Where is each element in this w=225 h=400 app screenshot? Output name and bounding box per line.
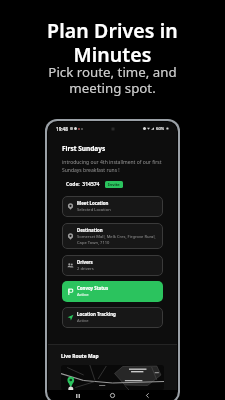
- staticText: Active: [77, 292, 89, 298]
- staticText: introducing our 4th installment of our f…: [62, 159, 162, 173]
- button[interactable]: Drivers: [62, 255, 163, 276]
- staticText: Pick route, time, and meeting spot.: [48, 63, 177, 97]
- staticText: Live Route Map: [61, 353, 99, 360]
- button[interactable]: Recent apps: [72, 390, 83, 400]
- staticText: Code: 314574: [66, 181, 100, 188]
- button[interactable]: Back: [142, 390, 153, 400]
- staticText: 60%: [156, 126, 165, 132]
- staticText: Plan Drives in Minutes: [47, 17, 178, 68]
- staticText: First Sundays: [62, 144, 106, 153]
- staticText: Selected Location: [77, 207, 111, 213]
- staticText: Invite: [108, 182, 120, 187]
- staticText: 19:48: [56, 126, 68, 132]
- staticText: Somerset Mall, Melk Cres, Firgrove Rural…: [77, 234, 156, 245]
- staticText: 2 drivers: [77, 266, 94, 272]
- staticText: Drivers: [77, 259, 93, 265]
- button[interactable]: Destination: [62, 223, 163, 249]
- button[interactable]: Convoy Status: [62, 281, 163, 302]
- staticText: Destination: [77, 227, 103, 233]
- button[interactable]: Meet Location: [62, 196, 163, 217]
- button[interactable]: Location Tracking: [62, 307, 163, 328]
- staticText: Location Tracking: [77, 311, 116, 317]
- button[interactable]: Home: [107, 390, 118, 400]
- staticText: Meet Location: [77, 200, 109, 206]
- staticText: Active: [77, 318, 89, 324]
- staticText: Convoy Status: [77, 285, 109, 291]
- button[interactable]: Invite: [105, 181, 123, 188]
